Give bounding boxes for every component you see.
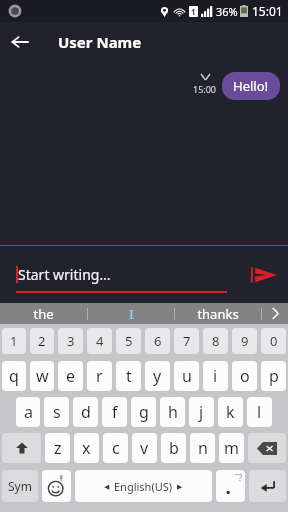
button[interactable]: n bbox=[190, 433, 215, 463]
staticText: c bbox=[112, 437, 120, 459]
button[interactable]: 5 bbox=[116, 328, 141, 354]
staticText: p bbox=[269, 365, 279, 387]
button[interactable]: c bbox=[103, 433, 128, 463]
button[interactable]: 2 bbox=[30, 328, 54, 354]
staticText: 36% bbox=[216, 4, 238, 19]
button[interactable]: 4 bbox=[87, 328, 112, 354]
button[interactable]: m bbox=[219, 433, 244, 463]
button[interactable]: Sym bbox=[2, 470, 38, 502]
staticText: 15:01 bbox=[252, 3, 283, 19]
button[interactable]: b bbox=[161, 433, 186, 463]
button[interactable]: More suggestions bbox=[262, 303, 288, 324]
button[interactable]: 7 bbox=[174, 328, 199, 354]
button[interactable]: i bbox=[203, 361, 228, 391]
button[interactable]: q bbox=[2, 361, 26, 391]
staticText: u bbox=[182, 365, 192, 387]
staticText: 7 bbox=[183, 332, 191, 350]
staticText: t bbox=[126, 365, 132, 387]
button[interactable]: z bbox=[45, 433, 70, 463]
staticText: Sym bbox=[8, 478, 32, 494]
staticText: v bbox=[140, 437, 149, 459]
button[interactable]: 8 bbox=[203, 328, 228, 354]
staticText: n bbox=[198, 437, 208, 459]
button[interactable]: d bbox=[73, 397, 98, 427]
button[interactable]: p bbox=[261, 361, 286, 391]
button[interactable]: f bbox=[102, 397, 127, 427]
button[interactable]: Hello! bbox=[222, 72, 280, 100]
button[interactable]: Shift bbox=[2, 433, 41, 463]
button[interactable]: 3 bbox=[58, 328, 83, 354]
button[interactable]: I bbox=[88, 303, 174, 324]
button[interactable]: u bbox=[174, 361, 199, 391]
staticText: ◀ bbox=[104, 483, 110, 491]
staticText: w bbox=[36, 365, 49, 387]
button[interactable]: Period bbox=[216, 470, 245, 502]
staticText: 1 bbox=[10, 332, 18, 350]
staticText: e bbox=[66, 365, 76, 387]
button[interactable]: o bbox=[232, 361, 257, 391]
staticText: Start writing… bbox=[18, 265, 111, 284]
staticText: l bbox=[257, 401, 262, 423]
button[interactable]: Back bbox=[0, 22, 40, 62]
staticText: the bbox=[33, 305, 54, 323]
button[interactable]: ◀ bbox=[75, 470, 212, 502]
button[interactable]: 1 bbox=[2, 328, 26, 354]
staticText: thanks bbox=[197, 305, 239, 323]
button[interactable]: the bbox=[0, 303, 87, 324]
button[interactable]: r bbox=[87, 361, 112, 391]
staticText: x bbox=[82, 437, 91, 459]
button[interactable]: Send bbox=[240, 251, 288, 299]
staticText: I bbox=[129, 305, 134, 323]
staticText: English(US) bbox=[114, 479, 173, 494]
staticText: 2 bbox=[38, 332, 46, 350]
staticText: o bbox=[240, 365, 250, 387]
staticText: d bbox=[81, 401, 91, 423]
button[interactable]: x bbox=[74, 433, 99, 463]
button[interactable]: k bbox=[218, 397, 243, 427]
staticText: g bbox=[139, 401, 149, 423]
button[interactable]: w bbox=[30, 361, 54, 391]
button[interactable]: s bbox=[44, 397, 69, 427]
staticText: r bbox=[96, 365, 103, 387]
button[interactable]: 9 bbox=[232, 328, 257, 354]
staticText: j bbox=[199, 401, 204, 423]
button[interactable]: e bbox=[58, 361, 83, 391]
staticText: y bbox=[153, 365, 162, 387]
staticText: 5 bbox=[125, 332, 133, 350]
staticText: ˝? bbox=[235, 472, 242, 483]
button[interactable]: Enter bbox=[249, 470, 286, 502]
staticText: h bbox=[168, 401, 178, 423]
staticText: 0 bbox=[270, 332, 278, 350]
staticText: 9 bbox=[241, 332, 249, 350]
staticText: a bbox=[24, 401, 33, 423]
staticText: m bbox=[224, 437, 239, 459]
staticText: z bbox=[54, 437, 62, 459]
staticText: i bbox=[213, 365, 218, 387]
button[interactable]: g bbox=[131, 397, 156, 427]
staticText: User Name bbox=[58, 32, 142, 52]
staticText: Hello! bbox=[233, 77, 269, 95]
button[interactable]: l bbox=[247, 397, 272, 427]
button[interactable]: a bbox=[16, 397, 40, 427]
button[interactable]: v bbox=[132, 433, 157, 463]
staticText: 6 bbox=[154, 332, 162, 350]
staticText: s bbox=[53, 401, 61, 423]
button[interactable]: 0 bbox=[261, 328, 286, 354]
staticText: ▶ bbox=[177, 483, 183, 491]
button[interactable]: t bbox=[116, 361, 141, 391]
button[interactable]: Emoji bbox=[42, 470, 71, 502]
button[interactable]: 6 bbox=[145, 328, 170, 354]
button[interactable]: j bbox=[189, 397, 214, 427]
staticText: f bbox=[112, 401, 118, 423]
staticText: q bbox=[9, 365, 19, 387]
staticText: 8 bbox=[212, 332, 220, 350]
staticText: 4 bbox=[96, 332, 104, 350]
button[interactable]: thanks bbox=[175, 303, 261, 324]
staticText: 15:00 bbox=[193, 83, 217, 95]
button[interactable]: y bbox=[145, 361, 170, 391]
staticText: k bbox=[226, 401, 235, 423]
button[interactable]: Backspace bbox=[248, 433, 286, 463]
button[interactable]: h bbox=[160, 397, 185, 427]
staticText: 3 bbox=[67, 332, 75, 350]
staticText: 1 bbox=[191, 6, 196, 17]
